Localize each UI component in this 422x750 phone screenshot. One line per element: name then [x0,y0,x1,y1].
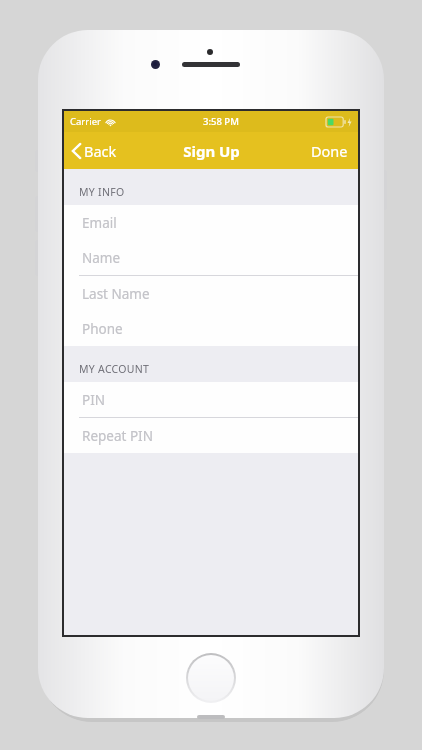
button[interactable]: Home [186,653,236,703]
staticText: MY INFO [79,185,125,199]
staticText: MY ACCOUNT [79,362,150,376]
staticText: Last Name [82,285,150,303]
button[interactable]: Phone [64,311,358,346]
staticText: Name [82,249,121,267]
button[interactable]: Last Name [64,276,358,311]
staticText: PIN [82,391,106,409]
staticText: Email [82,214,117,232]
button[interactable]: PIN [64,382,358,417]
button[interactable]: Name [64,240,358,275]
staticText: Repeat PIN [82,427,153,445]
button[interactable]: Repeat PIN [64,418,358,453]
staticText: 3:58 PM [203,115,239,128]
staticText: Sign Up [183,141,240,161]
staticText: Carrier [70,115,101,128]
staticText: Phone [82,320,123,338]
staticText: Back [84,141,117,161]
button[interactable]: Done [309,137,350,165]
button[interactable]: Email [64,205,358,240]
staticText: Done [311,141,348,161]
button[interactable]: Back [70,137,119,165]
